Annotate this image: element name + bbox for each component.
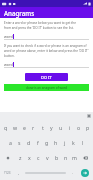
staticText: Anagrams [4,9,35,17]
button[interactable]: k [69,135,78,150]
staticText: l [82,139,84,146]
staticText: b [55,154,59,161]
staticText: p [86,124,90,131]
staticText: g [45,139,49,146]
staticText: , [18,170,20,176]
staticText: k [72,139,75,146]
button[interactable]: z [15,150,25,165]
staticText: r [32,124,35,131]
staticText: . [72,170,74,176]
button[interactable]: dorw is an anagram of word [4,84,89,91]
button[interactable]: x [25,150,34,165]
staticText: z [19,154,22,161]
button[interactable]: g [42,135,51,150]
staticText: DO IT [41,75,52,80]
staticText: j [64,139,66,146]
staticText: v [46,154,49,161]
button[interactable]: e [20,120,29,135]
staticText: d [27,139,31,146]
button[interactable]: t [38,120,47,135]
staticText: y [50,124,53,131]
button[interactable]: p [83,120,92,135]
button[interactable]: i [65,120,74,135]
staticText: button. [4,54,15,58]
button[interactable]: f [33,135,42,150]
staticText: u [59,124,63,131]
button[interactable]: y [47,120,56,135]
button[interactable]: r [29,120,38,135]
staticText: ?123 [4,171,11,175]
staticText: o [77,124,81,131]
staticText: w [13,124,18,131]
staticText: e [23,124,26,131]
button[interactable]: Space [23,165,68,180]
staticText: t [42,124,44,131]
staticText: Enter a word or phrase below you want to… [4,21,89,25]
staticText: a [9,139,12,146]
button[interactable]: Enter [77,165,92,180]
staticText: q [4,124,8,131]
button[interactable]: ?123 [1,165,14,180]
staticText: i [69,124,71,131]
button[interactable]: n [61,150,70,165]
button[interactable]: Keyboard settings [85,112,93,120]
staticText: dorw is an anagram of word [26,86,67,90]
button[interactable]: d [24,135,33,150]
staticText: m [72,154,77,161]
button[interactable]: v [43,150,52,165]
staticText: x [28,154,31,161]
button[interactable]: DO IT [25,73,68,81]
button[interactable]: m [70,150,79,165]
staticText: word [4,34,13,39]
button[interactable]: Backspace [79,150,92,165]
staticText: h [54,139,58,146]
button[interactable]: , [14,165,23,180]
button[interactable]: b [52,150,61,165]
button[interactable]: w [11,120,20,135]
button[interactable]: h [51,135,60,150]
button[interactable]: Shift [1,150,15,165]
button[interactable]: c [34,150,43,165]
staticText: c [37,154,40,161]
staticText: from and press the 'DO IT' button to see… [4,26,74,30]
staticText: If you want to check if a word or phrase… [4,44,89,48]
button[interactable]: u [56,120,65,135]
staticText: f [37,139,39,146]
staticText: word [4,62,13,67]
button[interactable]: s [15,135,24,150]
button[interactable]: j [60,135,69,150]
button[interactable]: o [74,120,83,135]
staticText: word or phrase above, enter it below and… [4,49,89,53]
button[interactable]: a [6,135,15,150]
staticText: n [64,154,68,161]
button[interactable]: q [1,120,11,135]
button[interactable]: l [78,135,87,150]
staticText: s [18,139,21,146]
